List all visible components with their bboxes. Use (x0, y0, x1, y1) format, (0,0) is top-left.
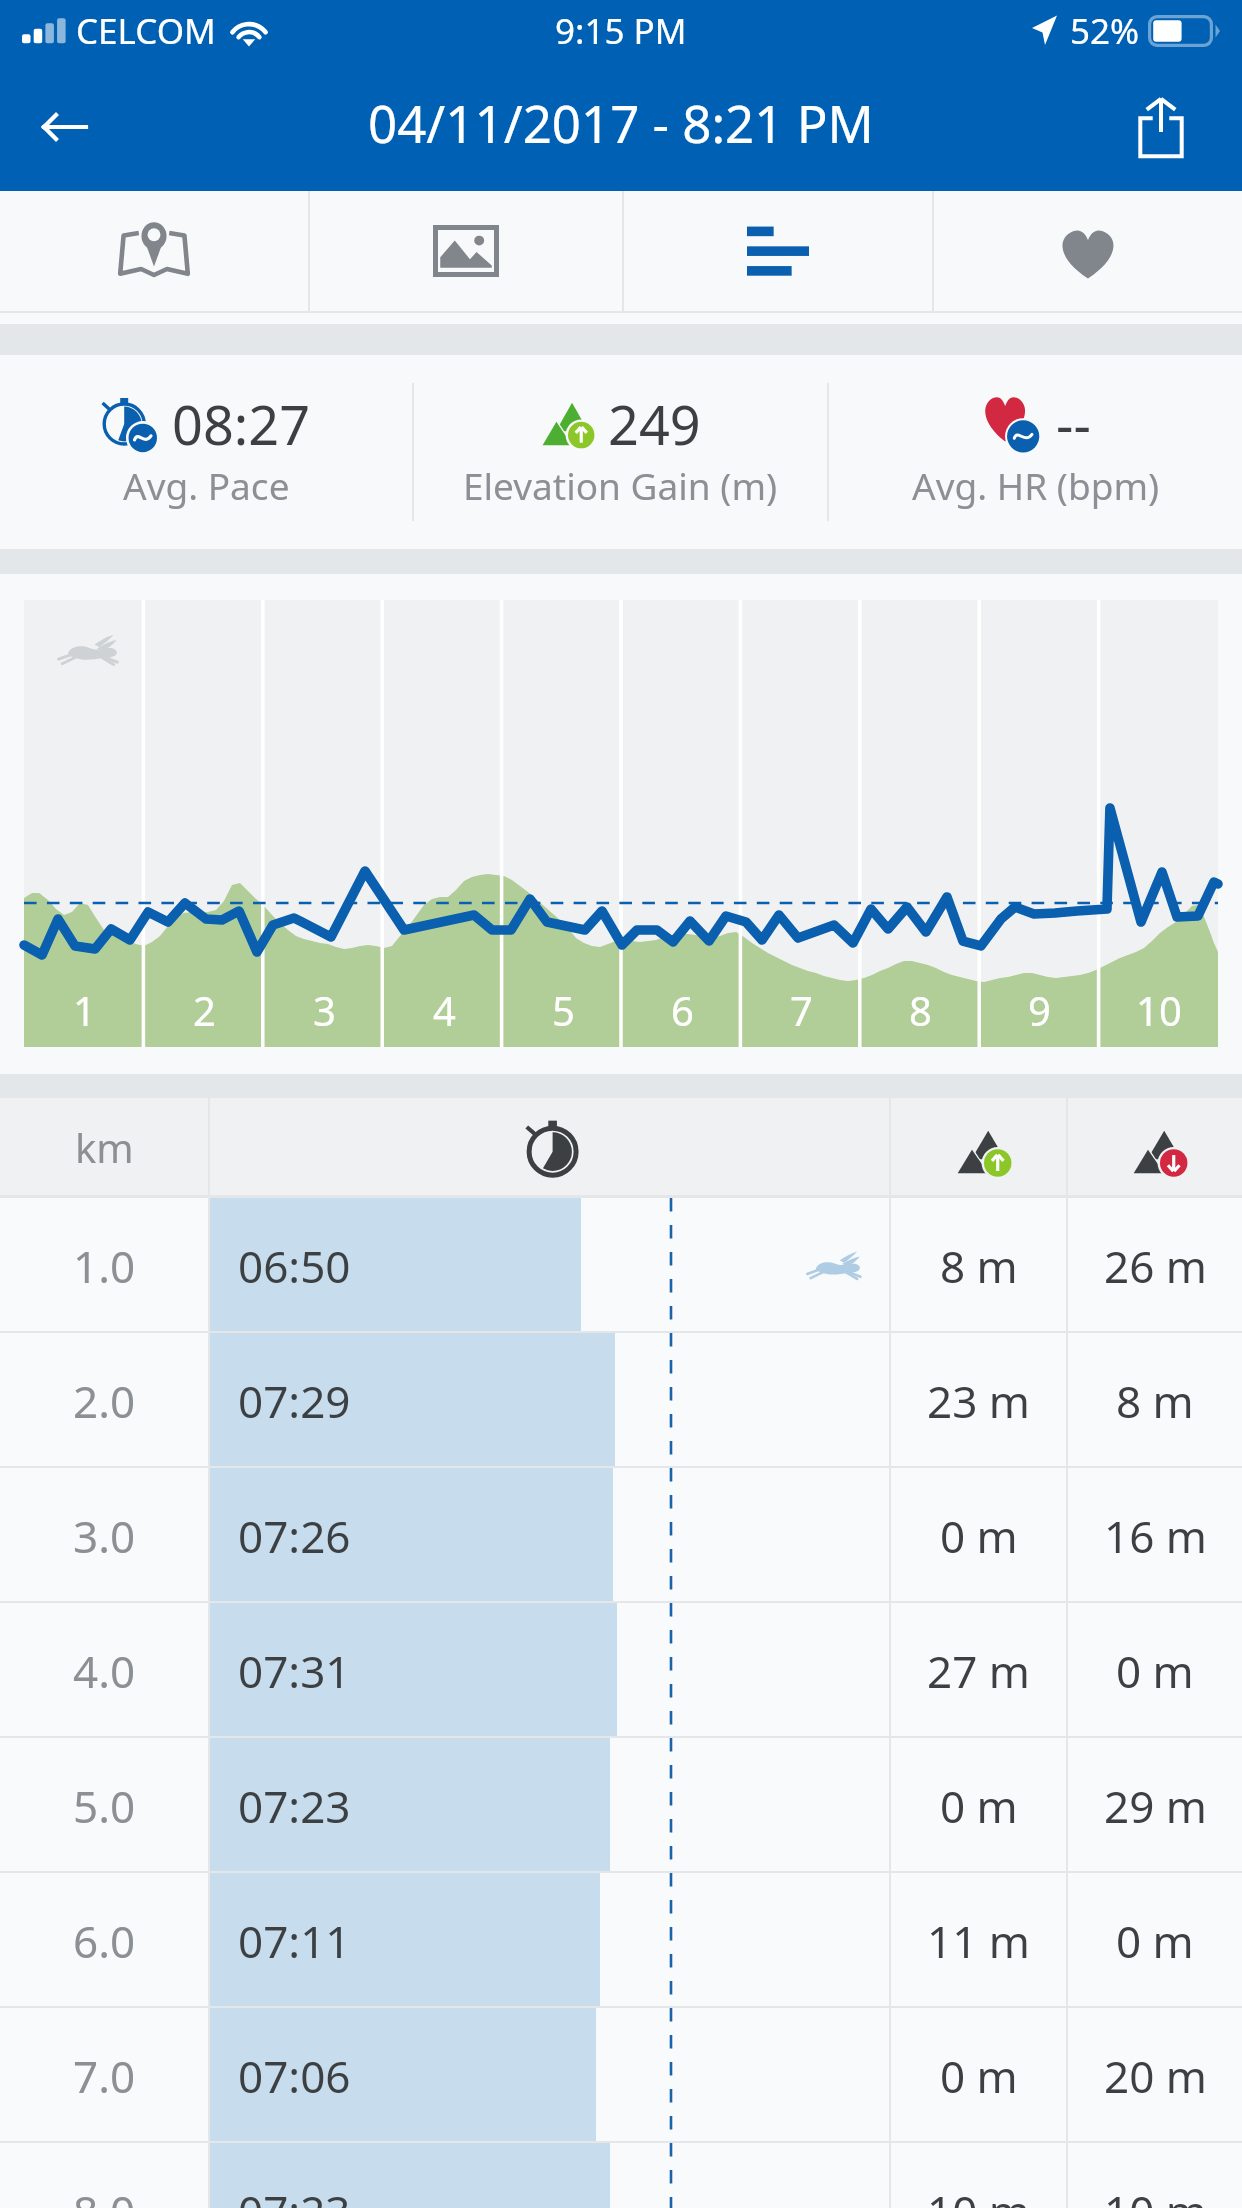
staticText: 20 m (1104, 2046, 1207, 2106)
staticText: 07:06 (238, 2046, 351, 2106)
button[interactable]: 08:27 (0, 355, 412, 549)
staticText: km (75, 1120, 134, 1174)
staticText: 4 (433, 983, 456, 1037)
staticText: 9 (1028, 983, 1051, 1037)
staticText: 6 (671, 983, 694, 1037)
staticText: 07:29 (238, 1371, 351, 1431)
staticText: 07:11 (238, 1911, 351, 1971)
staticText: 5 (552, 983, 575, 1037)
staticText: 7 (790, 983, 813, 1037)
staticText: 5.0 (73, 1776, 136, 1836)
staticText: 6.0 (73, 1911, 136, 1971)
button[interactable]: 5.0 (0, 1738, 1242, 1873)
staticText: 10 m (1104, 2181, 1207, 2208)
button[interactable]: 7.0 (0, 2008, 1242, 2143)
button[interactable]: 3.0 (0, 1468, 1242, 1603)
staticText: 04/11/2017 - 8:21 PM (368, 88, 874, 157)
staticText: 9:15 PM (555, 7, 687, 55)
staticText: Avg. HR (bpm) (912, 460, 1160, 510)
button[interactable]: Map (0, 191, 308, 311)
staticText: 8 (909, 983, 932, 1037)
staticText: 23 m (927, 1371, 1030, 1431)
staticText: 2 (193, 983, 216, 1037)
staticText: 29 m (1104, 1776, 1207, 1836)
button[interactable]: Splits (624, 191, 932, 311)
staticText: 8 m (940, 1236, 1018, 1296)
staticText: 4.0 (73, 1641, 136, 1701)
staticText: 52% (1070, 7, 1140, 55)
button[interactable]: 8.0 (0, 2143, 1242, 2208)
staticText: 27 m (927, 1641, 1030, 1701)
staticText: 07:26 (238, 1506, 351, 1566)
button[interactable]: -- (829, 355, 1242, 549)
staticText: 07:31 (238, 1641, 351, 1701)
staticText: 10 m (927, 2181, 1030, 2208)
staticText: -- (1056, 387, 1091, 461)
staticText: 3 (313, 983, 336, 1037)
staticText: 0 m (940, 1776, 1018, 1836)
staticText: 1.0 (73, 1236, 136, 1296)
button[interactable]: 2.0 (0, 1333, 1242, 1468)
staticText: 3.0 (73, 1506, 136, 1566)
button[interactable]: Share (1106, 72, 1216, 182)
button[interactable]: 4.0 (0, 1603, 1242, 1738)
staticText: 06:50 (238, 1236, 351, 1296)
staticText: 2.0 (73, 1371, 136, 1431)
staticText: 16 m (1104, 1506, 1207, 1566)
button[interactable]: 249 (414, 355, 827, 549)
staticText: 0 m (1116, 1911, 1194, 1971)
staticText: 08:27 (172, 387, 311, 461)
button[interactable]: Heart rate (934, 191, 1242, 311)
staticText: 26 m (1104, 1236, 1207, 1296)
staticText: 0 m (1116, 1641, 1194, 1701)
staticText: 7.0 (73, 2046, 136, 2106)
staticText: CELCOM (76, 7, 216, 55)
button[interactable]: 1.0 (0, 1198, 1242, 1333)
staticText: Avg. Pace (123, 460, 290, 510)
staticText: 0 m (940, 2046, 1018, 2106)
staticText: 1 (73, 983, 96, 1037)
button[interactable]: Photos (310, 191, 622, 311)
staticText: Elevation Gain (m) (463, 460, 778, 510)
staticText: 249 (608, 387, 701, 461)
staticText: 07:23 (238, 2181, 351, 2208)
staticText: 11 m (927, 1911, 1030, 1971)
button[interactable]: 6.0 (0, 1873, 1242, 2008)
staticText: 10 (1136, 983, 1182, 1037)
staticText: 8 m (1116, 1371, 1194, 1431)
button[interactable]: Back (10, 72, 120, 182)
staticText: 8.0 (73, 2181, 136, 2208)
staticText: 0 m (940, 1506, 1018, 1566)
staticText: 07:23 (238, 1776, 351, 1836)
